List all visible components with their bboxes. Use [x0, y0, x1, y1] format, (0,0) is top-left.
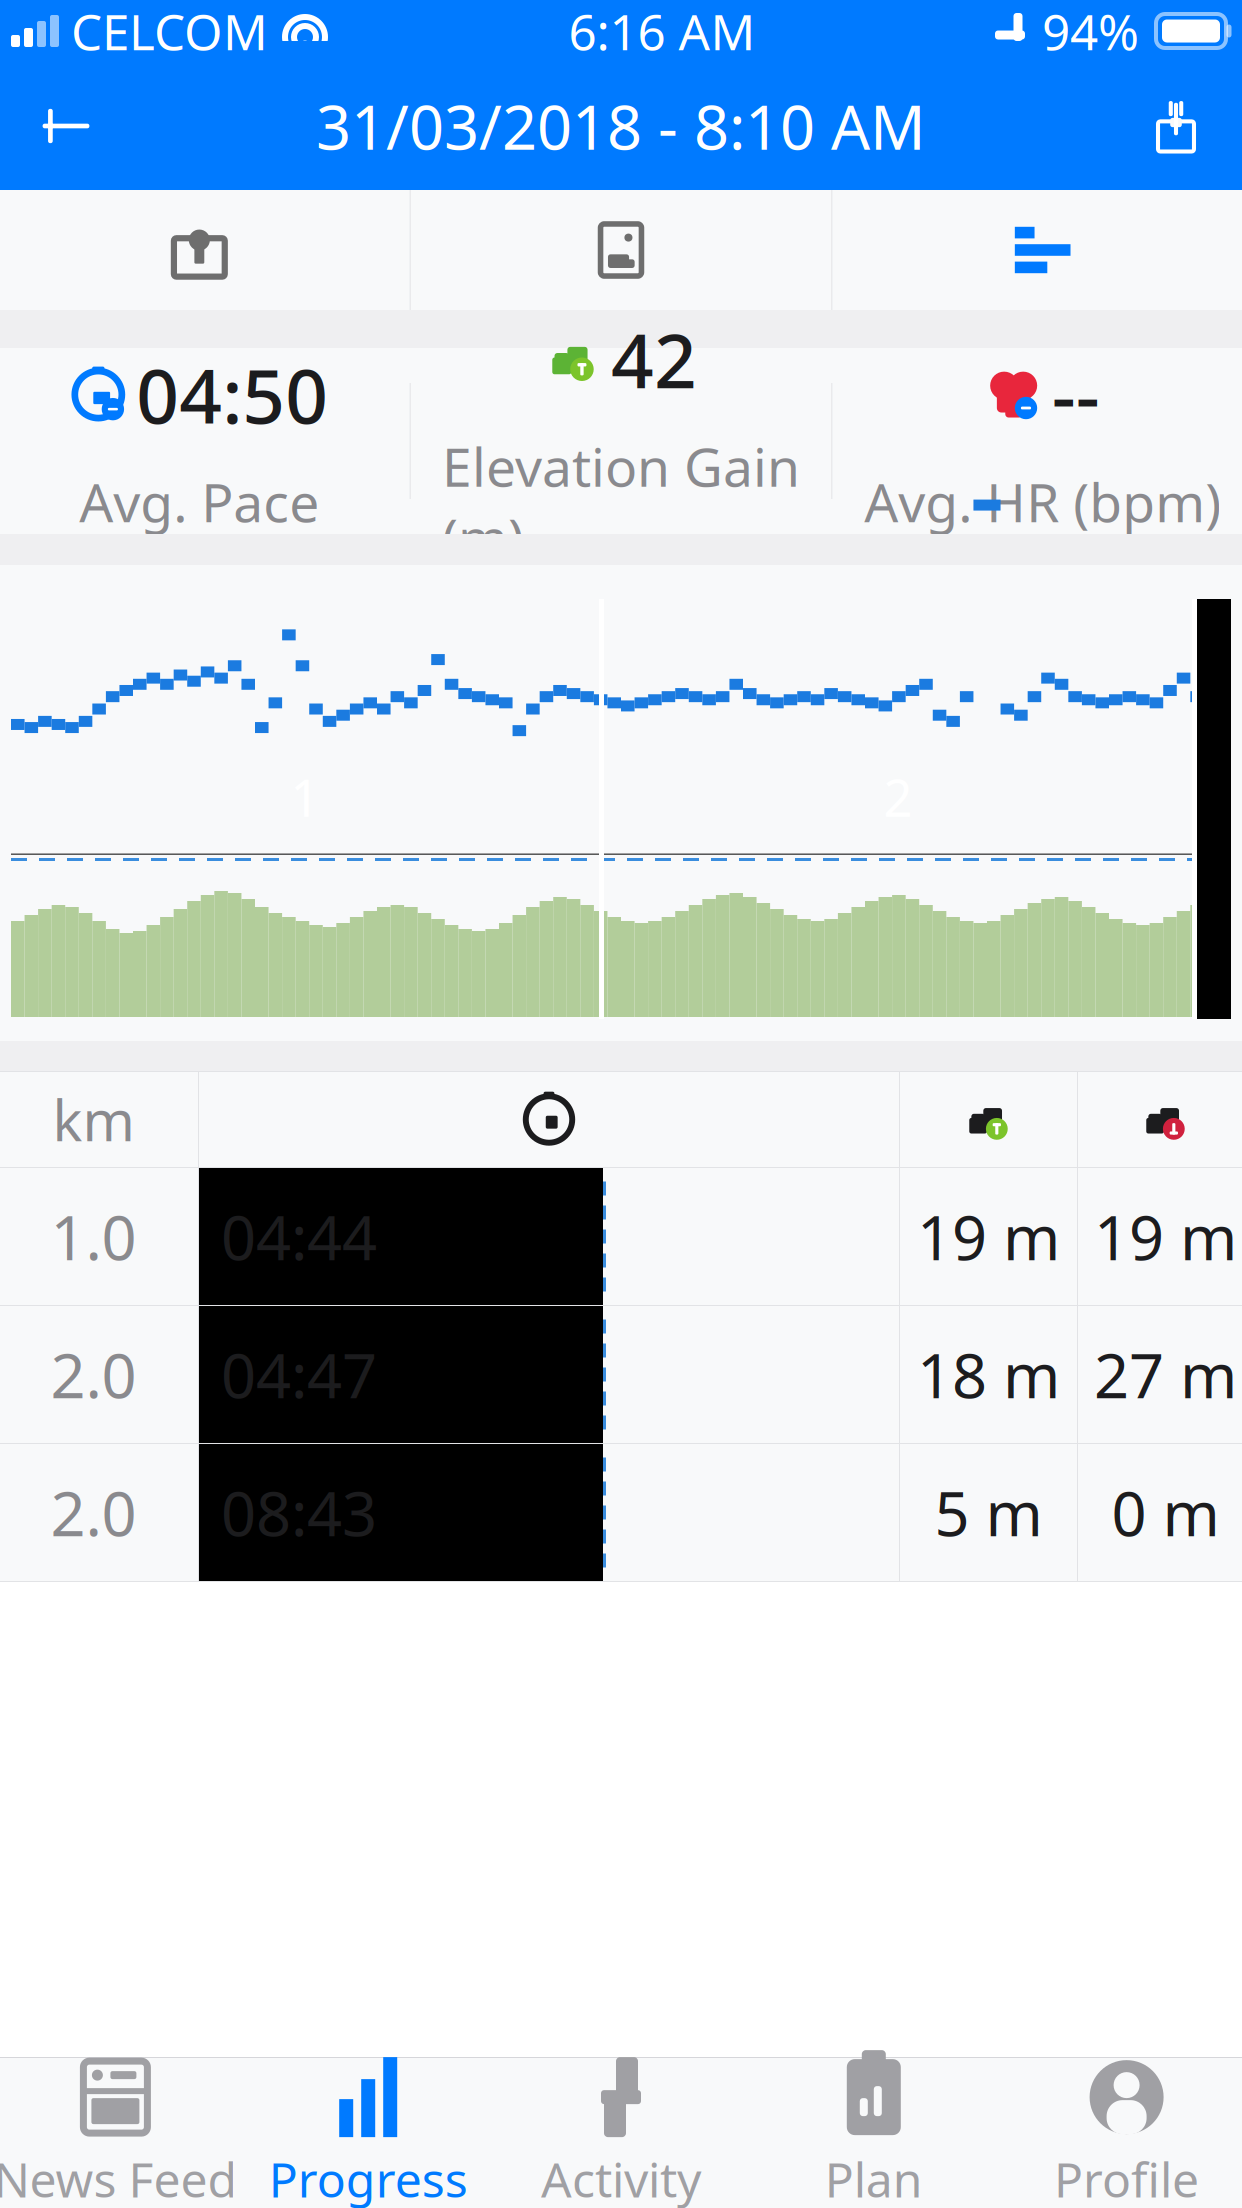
- staticText: CELCOM: [71, 0, 268, 64]
- staticText: Elevation Gain (m): [442, 431, 800, 572]
- staticText: 5 m: [934, 1472, 1042, 1553]
- button[interactable]: Plan: [747, 2058, 1000, 2208]
- staticText: 2.0: [50, 1334, 136, 1415]
- staticText: 19 m: [917, 1196, 1060, 1277]
- staticText: 04:44: [221, 1196, 377, 1277]
- staticText: --: [1052, 345, 1100, 444]
- staticText: Profile: [1054, 2147, 1199, 2208]
- button[interactable]: News Feed: [0, 2058, 242, 2208]
- button[interactable]: 2.0: [0, 1444, 1242, 1581]
- staticText: 08:43: [221, 1472, 377, 1553]
- button[interactable]: Back: [11, 71, 121, 181]
- staticText: Activity: [541, 2147, 701, 2208]
- staticText: Plan: [825, 2147, 923, 2208]
- staticText: 42: [611, 310, 697, 409]
- button[interactable]: Photos: [411, 190, 831, 310]
- button[interactable]: 1.0: [0, 1168, 1242, 1306]
- staticText: Avg. Pace: [79, 466, 319, 537]
- button[interactable]: Profile: [1000, 2058, 1242, 2208]
- button[interactable]: Share: [1121, 71, 1231, 181]
- staticText: 19 m: [1094, 1196, 1237, 1277]
- staticText: 04:50: [136, 345, 328, 444]
- staticText: 94%: [1042, 0, 1139, 64]
- staticText: 27 m: [1094, 1334, 1237, 1415]
- staticText: km: [52, 1082, 134, 1157]
- staticText: 04:47: [221, 1334, 377, 1415]
- button[interactable]: 2.0: [0, 1306, 1242, 1444]
- button[interactable]: Map: [0, 190, 410, 310]
- button[interactable]: Activity: [495, 2058, 747, 2208]
- staticText: 1.0: [50, 1196, 136, 1277]
- button[interactable]: Progress: [242, 2058, 495, 2208]
- staticText: 2.0: [50, 1472, 136, 1553]
- staticText: News Feed: [0, 2147, 237, 2208]
- staticText: 18 m: [917, 1334, 1060, 1415]
- staticText: 0 m: [1111, 1472, 1219, 1553]
- staticText: 31/03/2018 - 8:10 AM: [316, 85, 926, 167]
- staticText: 6:16 AM: [568, 0, 755, 64]
- staticText: Avg. HR (bpm): [864, 466, 1221, 537]
- button[interactable]: Statistics: [832, 190, 1242, 310]
- staticText: Progress: [269, 2147, 468, 2208]
